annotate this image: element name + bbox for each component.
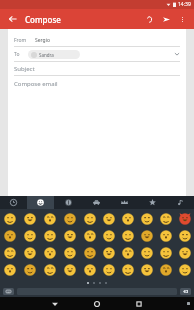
button[interactable]: Emoji 7	[137, 210, 156, 227]
button[interactable]: Emoji 21	[20, 244, 40, 261]
button[interactable]: Emoji 27	[137, 244, 156, 261]
button[interactable]: Emoji 25	[99, 244, 118, 261]
button[interactable]: Objects	[110, 196, 138, 209]
button[interactable]: Sandra	[28, 50, 80, 59]
button[interactable]: Emoji 24	[80, 244, 99, 261]
button[interactable]: Emoji 16	[118, 227, 137, 244]
button[interactable]: Emoji 33	[60, 261, 80, 278]
staticText: From	[14, 37, 27, 44]
button[interactable]: Emoji 22	[40, 244, 60, 261]
button[interactable]: Emoji 38	[156, 261, 175, 278]
button[interactable]: Recents	[126, 297, 152, 310]
button[interactable]: Send	[159, 12, 173, 26]
button[interactable]: Emoji 35	[99, 261, 118, 278]
button[interactable]: Emoji 3	[60, 210, 80, 227]
button[interactable]: Emoji 30	[0, 261, 20, 278]
button[interactable]: Activities	[54, 196, 82, 209]
button[interactable]: Emoji 34	[80, 261, 99, 278]
button[interactable]: Emoji 23	[60, 244, 80, 261]
staticText: Sergio	[35, 37, 50, 44]
button[interactable]: Emoji 9	[175, 210, 194, 227]
button[interactable]: Emoji 36	[118, 261, 137, 278]
button[interactable]: Emoji 4	[80, 210, 99, 227]
button[interactable]: Backspace	[180, 288, 191, 295]
staticText: To	[14, 51, 20, 58]
button[interactable]: Emoji 39	[175, 261, 194, 278]
button[interactable]: Subject	[8, 62, 186, 75]
button[interactable]: Emoji 20	[0, 244, 20, 261]
button[interactable]: Emoji 2	[40, 210, 60, 227]
button[interactable]: Emoji 0	[0, 210, 20, 227]
button[interactable]: Emoji 1	[20, 210, 40, 227]
button[interactable]: Smileys	[27, 196, 54, 209]
staticText: Compose email	[14, 80, 58, 88]
button[interactable]: Back	[6, 12, 20, 26]
button[interactable]: Back	[42, 297, 68, 310]
button[interactable]: Emoji 18	[156, 227, 175, 244]
button[interactable]: Emoji 31	[20, 261, 40, 278]
button[interactable]: Emoji 17	[137, 227, 156, 244]
button[interactable]: Compose email	[8, 76, 186, 196]
button[interactable]: Emoji 14	[80, 227, 99, 244]
button[interactable]: Emoji 10	[0, 227, 20, 244]
button[interactable]: To	[8, 47, 186, 61]
staticText: Compose	[25, 14, 61, 25]
button[interactable]: Emoji 32	[40, 261, 60, 278]
button[interactable]: Recent	[0, 196, 27, 209]
button[interactable]: Attach file	[142, 12, 156, 26]
button[interactable]: Home	[84, 297, 110, 310]
button[interactable]: Emoji 12	[40, 227, 60, 244]
button[interactable]: Symbols	[166, 196, 194, 209]
staticText: Sandra	[39, 52, 54, 58]
button[interactable]: Emoji 6	[118, 210, 137, 227]
button[interactable]: Emoji 26	[118, 244, 137, 261]
button[interactable]: Emoji 13	[60, 227, 80, 244]
button[interactable]: Switch to keyboard	[3, 288, 14, 295]
staticText: 14:39	[178, 1, 191, 8]
button[interactable]: Emoji 28	[156, 244, 175, 261]
button[interactable]: Favorites	[138, 196, 166, 209]
button[interactable]: Emoji 5	[99, 210, 118, 227]
button[interactable]: Emoji 37	[137, 261, 156, 278]
button[interactable]: Emoji 15	[99, 227, 118, 244]
button[interactable]: Emoji 19	[175, 227, 194, 244]
button[interactable]: Travel	[82, 196, 110, 209]
staticText: Subject	[14, 65, 35, 73]
button[interactable]: Emoji 29	[175, 244, 194, 261]
button[interactable]: Emoji 11	[20, 227, 40, 244]
button[interactable]: Emoji 8	[156, 210, 175, 227]
button[interactable]: From	[8, 34, 186, 46]
button[interactable]: More options	[176, 13, 188, 25]
